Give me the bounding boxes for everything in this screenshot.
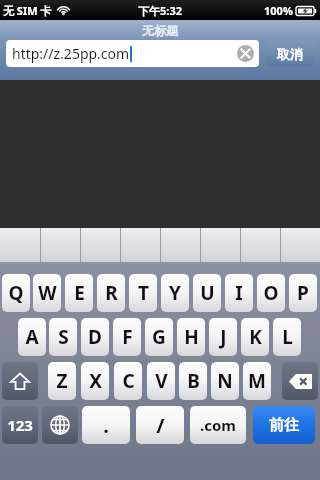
staticText: G	[152, 324, 166, 350]
staticText: S	[58, 324, 69, 350]
button[interactable]: B	[179, 362, 207, 400]
button[interactable]: N	[211, 362, 239, 400]
staticText: O	[263, 280, 279, 306]
staticText: K	[249, 324, 262, 350]
button[interactable]: G	[145, 318, 173, 356]
button[interactable]: K	[241, 318, 269, 356]
button[interactable]: D	[81, 318, 109, 356]
staticText: L	[282, 324, 293, 350]
staticText: T	[138, 280, 149, 306]
button[interactable]	[0, 228, 40, 262]
staticText: Z	[56, 368, 68, 394]
staticText: D	[88, 324, 102, 350]
button[interactable]: Y	[161, 274, 189, 312]
staticText: P	[297, 280, 309, 306]
button[interactable]: Shift	[2, 362, 38, 400]
staticText: E	[74, 280, 85, 306]
staticText: B	[187, 368, 200, 394]
button[interactable]: L	[273, 318, 301, 356]
button[interactable]: 取消	[265, 40, 315, 67]
staticText: 无标题	[142, 23, 178, 38]
button[interactable]: U	[193, 274, 221, 312]
button[interactable]: C	[114, 362, 142, 400]
button[interactable]: J	[209, 318, 237, 356]
button[interactable]: .	[82, 406, 130, 444]
button[interactable]: 123	[2, 406, 38, 444]
button[interactable]: S	[49, 318, 77, 356]
staticText: U	[200, 280, 215, 306]
staticText: 123	[7, 415, 33, 435]
staticText: F	[122, 324, 133, 350]
button[interactable]: M	[243, 362, 271, 400]
staticText: A	[25, 324, 39, 350]
button[interactable]: A	[18, 318, 46, 356]
button[interactable]: Switch keyboard language	[42, 406, 78, 444]
button[interactable]: H	[177, 318, 205, 356]
staticText: 无 SIM 卡	[3, 3, 52, 18]
staticText: .	[103, 412, 109, 439]
button[interactable]: R	[97, 274, 125, 312]
staticText: /	[156, 412, 165, 439]
button[interactable]	[80, 228, 120, 262]
button[interactable]	[120, 228, 160, 262]
staticText: http://z.25pp.com	[12, 44, 130, 63]
staticText: R	[105, 280, 118, 306]
button[interactable]: I	[225, 274, 253, 312]
staticText: 前往	[269, 416, 299, 435]
staticText: Y	[169, 280, 181, 306]
button[interactable]: Q	[2, 274, 30, 312]
button[interactable]: Delete	[282, 362, 318, 400]
staticText: 取消	[277, 46, 303, 62]
button[interactable]: Clear text	[237, 45, 254, 62]
button[interactable]: T	[129, 274, 157, 312]
button[interactable]: F	[113, 318, 141, 356]
button[interactable]: O	[257, 274, 285, 312]
button[interactable]: http://z.25pp.com	[6, 40, 259, 67]
button[interactable]	[40, 228, 80, 262]
staticText: 100%	[264, 3, 293, 18]
staticText: I	[235, 280, 243, 306]
button[interactable]	[240, 228, 280, 262]
staticText: Q	[8, 280, 24, 306]
staticText: V	[155, 368, 168, 394]
staticText: C	[122, 368, 135, 394]
button[interactable]	[200, 228, 240, 262]
staticText: N	[217, 368, 233, 394]
button[interactable]: .com	[190, 406, 246, 444]
button[interactable]: X	[81, 362, 109, 400]
staticText: J	[220, 324, 227, 350]
staticText: W	[38, 280, 57, 306]
staticText: X	[89, 368, 102, 394]
button[interactable]: Z	[48, 362, 76, 400]
staticText: M	[248, 368, 266, 394]
button[interactable]	[160, 228, 200, 262]
button[interactable]: P	[289, 274, 317, 312]
staticText: 下午5:32	[138, 3, 182, 18]
button[interactable]: 前往	[253, 406, 315, 444]
button[interactable]: E	[65, 274, 93, 312]
button[interactable]: V	[147, 362, 175, 400]
button[interactable]: W	[33, 274, 61, 312]
button[interactable]: /	[136, 406, 184, 444]
staticText: .com	[200, 415, 236, 435]
button[interactable]	[280, 228, 320, 262]
staticText: H	[184, 324, 199, 350]
